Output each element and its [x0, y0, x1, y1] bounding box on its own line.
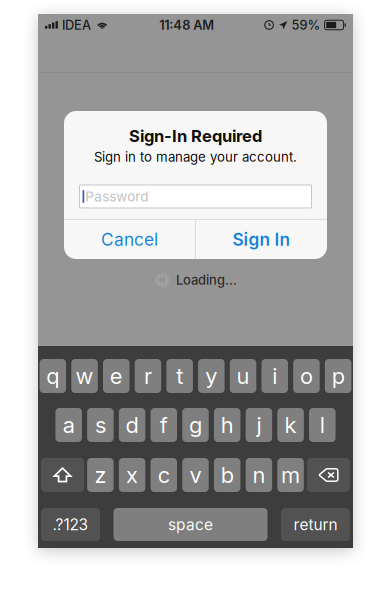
button[interactable]: space	[113, 508, 267, 541]
staticText: i	[272, 363, 277, 389]
staticText: g	[189, 412, 202, 438]
staticText: Sign In	[232, 229, 290, 250]
button[interactable]: s	[87, 408, 114, 442]
staticText: y	[205, 363, 217, 389]
staticText: z	[94, 462, 106, 488]
button[interactable]: v	[182, 458, 209, 492]
staticText: x	[126, 462, 138, 488]
button[interactable]: l	[309, 408, 335, 442]
staticText: v	[189, 462, 201, 488]
button[interactable]: r	[135, 359, 161, 393]
staticText: j	[256, 412, 261, 438]
staticText: h	[221, 412, 234, 438]
button[interactable]: Sign In	[196, 220, 327, 259]
button[interactable]: k	[277, 408, 304, 442]
button[interactable]: d	[119, 408, 145, 442]
staticText: Cancel	[101, 229, 158, 250]
staticText: e	[110, 363, 123, 389]
staticText: 59%	[292, 17, 321, 33]
staticText: space	[168, 515, 213, 534]
staticText: Sign in to manage your account.	[94, 149, 297, 165]
staticText: n	[252, 462, 265, 488]
button[interactable]: m	[277, 458, 304, 492]
staticText: b	[221, 462, 234, 488]
staticText: Sign-In Required	[129, 126, 262, 146]
button[interactable]: p	[325, 359, 351, 393]
staticText: 11:48 AM	[159, 17, 214, 33]
button[interactable]: Delete	[307, 458, 350, 492]
staticText: r	[144, 363, 152, 389]
staticText: u	[236, 363, 249, 389]
button[interactable]: q	[40, 359, 66, 393]
staticText: o	[300, 363, 313, 389]
button[interactable]: u	[230, 359, 256, 393]
button[interactable]: c	[151, 458, 177, 492]
staticText: s	[95, 412, 106, 438]
button[interactable]: o	[293, 359, 320, 393]
button[interactable]: return	[281, 508, 350, 541]
staticText: f	[160, 412, 168, 438]
staticText: l	[320, 412, 325, 438]
button[interactable]: a	[55, 408, 82, 442]
button[interactable]: w	[71, 359, 98, 393]
staticText: return	[293, 515, 337, 534]
button[interactable]: Cancel	[64, 220, 195, 259]
button[interactable]: z	[87, 458, 114, 492]
button[interactable]: n	[246, 458, 272, 492]
button[interactable]: f	[150, 408, 177, 442]
staticText: Password	[85, 188, 148, 205]
staticText: p	[332, 363, 345, 389]
button[interactable]: b	[214, 458, 240, 492]
button[interactable]: j	[246, 408, 272, 442]
staticText: .?123	[52, 515, 88, 534]
button[interactable]: g	[182, 408, 209, 442]
staticText: t	[176, 363, 183, 389]
button[interactable]: .?123	[41, 508, 100, 541]
button[interactable]: x	[119, 458, 145, 492]
button[interactable]: h	[214, 408, 240, 442]
button[interactable]: y	[198, 359, 225, 393]
staticText: IDEA	[62, 17, 91, 33]
button[interactable]: Shift	[41, 458, 84, 492]
button[interactable]: t	[166, 359, 193, 393]
staticText: c	[158, 462, 170, 488]
staticText: d	[126, 412, 139, 438]
staticText: m	[281, 462, 300, 488]
staticText: q	[46, 363, 59, 389]
staticText: k	[285, 412, 297, 438]
staticText: Loading...	[176, 272, 237, 288]
staticText: a	[63, 412, 75, 438]
staticText: w	[75, 363, 93, 389]
button[interactable]: i	[261, 359, 288, 393]
button[interactable]: e	[103, 359, 129, 393]
